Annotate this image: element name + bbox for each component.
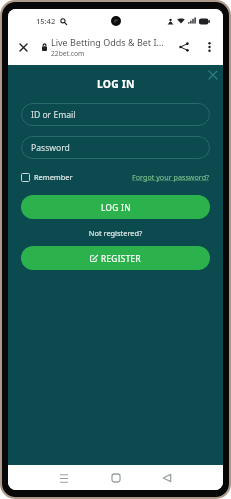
staticText: LOG IN xyxy=(97,77,135,90)
button[interactable]: Back xyxy=(156,467,178,489)
staticText: REGISTER xyxy=(101,253,141,264)
staticText: 22bet.com xyxy=(51,49,85,58)
staticText: Remember xyxy=(34,172,73,182)
button[interactable]: Remember xyxy=(21,172,73,182)
button[interactable]: More options xyxy=(196,33,222,61)
button[interactable]: Home xyxy=(105,467,127,489)
button[interactable]: ID or Email xyxy=(21,103,210,126)
button[interactable]: Password xyxy=(21,136,210,159)
staticText: LOG IN xyxy=(101,202,131,213)
button[interactable]: Share xyxy=(171,33,196,61)
button[interactable]: LOG IN xyxy=(21,195,210,219)
staticText: Password xyxy=(31,142,70,154)
staticText: 15:42 xyxy=(36,16,56,26)
button[interactable]: Close xyxy=(8,33,38,61)
button[interactable]: Close dialog xyxy=(206,68,219,81)
button[interactable]: REGISTER xyxy=(21,246,210,270)
button[interactable]: Forgot your password? xyxy=(132,172,210,182)
staticText: Live Betting Odds & Bet I… xyxy=(51,36,164,48)
staticText: Not registered? xyxy=(8,228,223,238)
button[interactable]: Recent apps xyxy=(53,467,75,489)
staticText: ID or Email xyxy=(31,109,76,121)
